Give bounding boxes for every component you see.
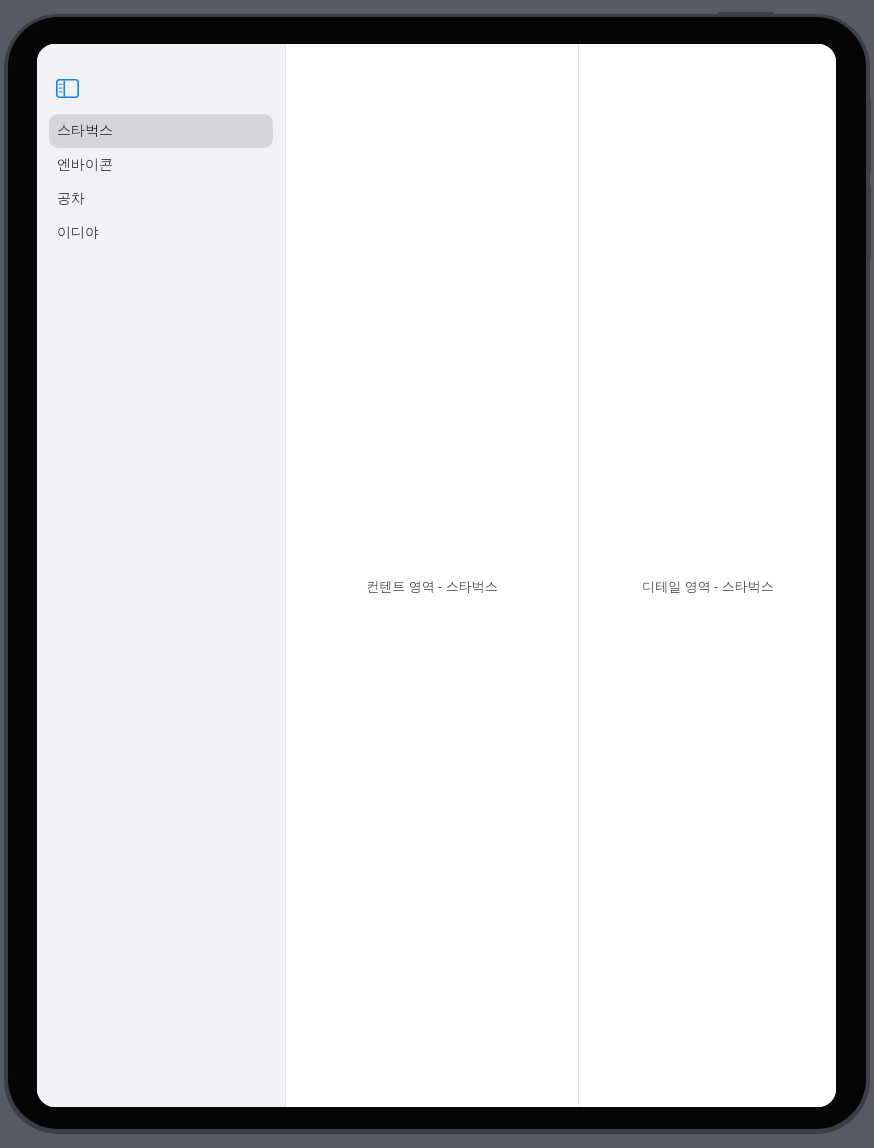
button[interactable]: 스타벅스	[49, 114, 273, 148]
staticText: 엔바이콘	[57, 156, 113, 174]
button[interactable]: 이디야	[49, 216, 273, 250]
staticText: 이디야	[57, 224, 99, 242]
button[interactable]: 사이드바 토글	[49, 70, 85, 106]
staticText: 디테일 영역 - 스타벅스	[642, 577, 774, 595]
staticText: 스타벅스	[57, 122, 113, 140]
button[interactable]: 엔바이콘	[49, 148, 273, 182]
button[interactable]: 공차	[49, 182, 273, 216]
staticText: 공차	[57, 190, 85, 208]
staticText: 컨텐트 영역 - 스타벅스	[366, 577, 498, 595]
